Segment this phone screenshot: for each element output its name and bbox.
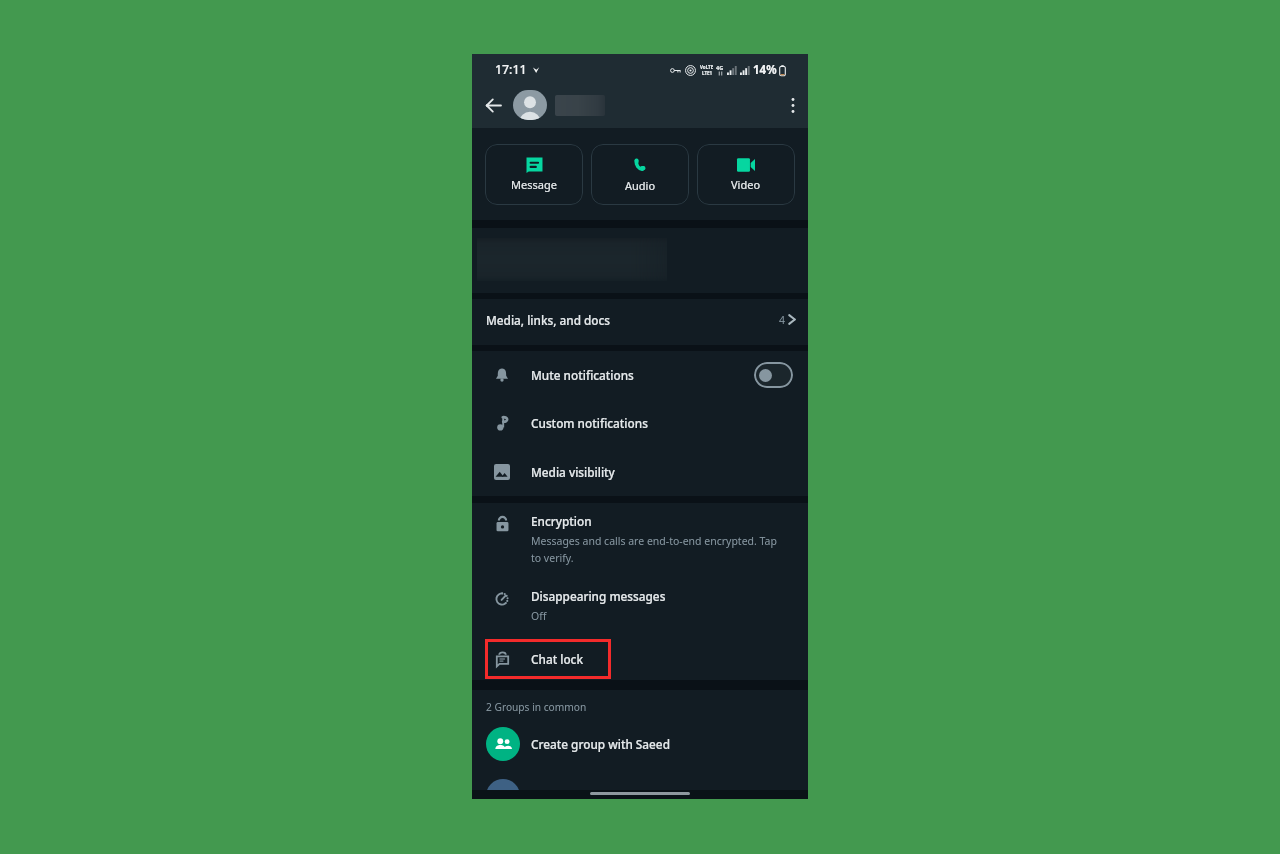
staticText: Off xyxy=(531,609,547,623)
button[interactable]: Disappearing messages xyxy=(472,588,808,623)
staticText: Media visibility xyxy=(531,464,615,480)
staticText: 2 Groups in common xyxy=(486,700,587,714)
button[interactable]: Video xyxy=(697,144,795,205)
staticText: 4G xyxy=(716,64,724,71)
staticText: Chat lock xyxy=(531,651,584,667)
button[interactable]: Message xyxy=(485,144,583,205)
button[interactable]: Media, links, and docs xyxy=(472,299,808,345)
button[interactable]: Encryption xyxy=(472,503,808,565)
staticText: Mute notifications xyxy=(531,367,634,383)
button[interactable]: Back xyxy=(478,90,508,120)
staticText: 4 xyxy=(779,313,786,327)
staticText: LTE1 xyxy=(702,70,713,76)
button[interactable]: Custom notifications xyxy=(472,399,808,447)
staticText: Video xyxy=(731,177,761,192)
other: VPN xyxy=(670,65,681,76)
button[interactable]: Mute notifications xyxy=(472,351,808,399)
staticText: 14% xyxy=(753,62,777,78)
button[interactable]: More options xyxy=(778,90,808,120)
staticText: Encryption xyxy=(531,513,592,529)
staticText: Disappearing messages xyxy=(531,588,666,604)
staticText: Custom notifications xyxy=(531,415,648,431)
staticText: Messages and calls are end-to-end encryp… xyxy=(531,534,777,565)
button[interactable]: Media visibility xyxy=(472,447,808,496)
staticText: VoLTE xyxy=(700,64,714,70)
button[interactable]: Audio xyxy=(591,144,689,205)
staticText: Message xyxy=(511,177,557,192)
staticText: Media, links, and docs xyxy=(486,312,611,328)
button[interactable]: Special Family xyxy=(472,779,808,799)
button[interactable]: Mute notifications toggle xyxy=(754,362,793,388)
staticText: Create group with Saeed xyxy=(531,736,670,752)
staticText: Special Family xyxy=(534,788,614,799)
button[interactable]: Create group with Saeed xyxy=(472,721,808,767)
staticText: 17:11 xyxy=(495,61,527,78)
button[interactable]: Chat lock xyxy=(472,639,808,678)
staticText: Audio xyxy=(625,178,656,193)
